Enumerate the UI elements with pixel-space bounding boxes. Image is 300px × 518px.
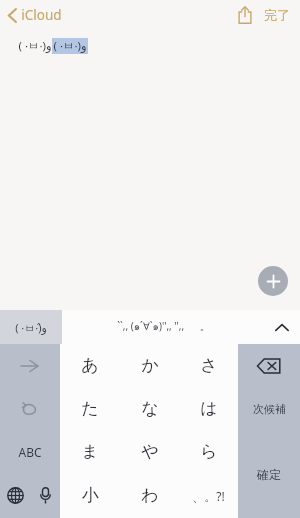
staticText: た <box>81 398 99 419</box>
button[interactable]: ま <box>60 430 120 473</box>
staticText: や <box>141 441 159 462</box>
staticText: 小 <box>82 485 99 506</box>
staticText: ま <box>81 441 99 462</box>
button[interactable]: 、。?! <box>179 473 238 518</box>
staticText: 確定 <box>257 467 281 482</box>
button[interactable]: や <box>120 430 179 473</box>
staticText: ( ·ㅂ·)و̂ <box>15 320 47 335</box>
button[interactable]: か <box>120 344 179 387</box>
button[interactable]: 次候補 <box>238 387 300 430</box>
staticText: ``,, (๑´∀`๑)'',, '',, 。 <box>117 319 210 335</box>
button[interactable]: Share <box>230 3 260 27</box>
staticText: ( ·ㅂ·)و <box>18 38 52 54</box>
button[interactable]: New note <box>258 266 288 296</box>
button[interactable] <box>0 387 60 430</box>
staticText: iCloud <box>21 6 62 24</box>
staticText: わ <box>141 485 159 506</box>
button[interactable]: Expand suggestions <box>264 310 300 344</box>
button[interactable]: は <box>179 387 238 430</box>
button[interactable]: iCloud <box>0 4 70 26</box>
button[interactable]: 小 <box>60 473 120 518</box>
staticText: ら <box>200 441 218 462</box>
button[interactable]: あ <box>60 344 120 387</box>
staticText: 、。?! <box>192 488 225 504</box>
button[interactable]: さ <box>179 344 238 387</box>
staticText: な <box>141 398 159 419</box>
button[interactable]: わ <box>120 473 179 518</box>
button[interactable]: ら <box>179 430 238 473</box>
button[interactable]: ``,, (๑´∀`๑)'',, '',, 。 <box>62 310 264 344</box>
button[interactable] <box>0 344 60 387</box>
button[interactable]: 完了 <box>260 5 300 25</box>
staticText: 完了 <box>264 7 290 23</box>
button[interactable]: た <box>60 387 120 430</box>
staticText: か <box>141 355 159 376</box>
staticText: ( ·ㅂ·)و <box>53 38 87 54</box>
staticText: は <box>200 398 218 419</box>
staticText: ABC <box>18 444 42 460</box>
button[interactable]: Change keyboard <box>0 473 30 518</box>
button[interactable]: Delete <box>238 344 300 387</box>
button[interactable]: な <box>120 387 179 430</box>
staticText: あ <box>81 355 99 376</box>
button[interactable]: Dictation <box>30 473 60 518</box>
button[interactable]: 確定 <box>238 430 300 518</box>
button[interactable]: ABC <box>0 430 60 473</box>
button[interactable]: ( ·ㅂ·)و̂ <box>0 310 62 344</box>
staticText: さ <box>200 355 218 376</box>
staticText: 次候補 <box>253 402 286 416</box>
